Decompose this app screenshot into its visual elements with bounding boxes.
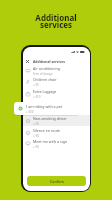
button[interactable]: Children chair bbox=[23, 76, 90, 87]
button[interactable]: Extra luggage bbox=[23, 88, 90, 99]
staticText: Meet me with a sign bbox=[33, 139, 68, 144]
button[interactable]: Close bbox=[25, 59, 30, 64]
staticText: Confirm bbox=[50, 179, 64, 184]
button[interactable]: Confirm bbox=[27, 176, 86, 186]
staticText: + €5 bbox=[33, 83, 39, 87]
staticText: Free of charge bbox=[33, 72, 53, 76]
staticText: Children chair bbox=[33, 77, 57, 82]
button[interactable]: Silence en route bbox=[23, 127, 90, 138]
staticText: Additional services bbox=[0, 12, 112, 30]
staticText: Non-smoking driver bbox=[33, 116, 67, 121]
button[interactable]: I am riding with a pet bbox=[14, 102, 79, 115]
button[interactable]: Non-smoking driver bbox=[23, 115, 90, 126]
staticText: + €10 bbox=[33, 95, 41, 99]
staticText: Silence en route bbox=[33, 128, 61, 133]
staticText: Additional services bbox=[33, 59, 66, 64]
staticText: + €0 bbox=[33, 122, 39, 126]
staticText: I am riding with a pet bbox=[26, 104, 63, 109]
staticText: + €0 bbox=[33, 134, 39, 138]
button[interactable]: Meet me with a sign bbox=[23, 138, 90, 149]
staticText: + €20 bbox=[26, 110, 34, 114]
button[interactable]: Air conditioning bbox=[23, 65, 90, 76]
staticText: Air conditioning bbox=[33, 66, 60, 71]
staticText: Extra luggage bbox=[33, 89, 57, 94]
staticText: + €0 bbox=[33, 145, 39, 149]
